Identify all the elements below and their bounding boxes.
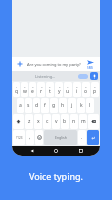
staticText: v: [55, 118, 58, 125]
button[interactable]: Microphone: [90, 72, 98, 80]
staticText: Are you coming to my party?: [27, 62, 81, 67]
staticText: w: [23, 88, 27, 95]
staticText: h: [61, 102, 65, 109]
staticText: r: [40, 88, 43, 95]
button[interactable]: g: [50, 98, 58, 113]
button[interactable]: a: [17, 98, 24, 113]
button[interactable]: .: [78, 130, 86, 145]
staticText: ?123: [16, 136, 23, 140]
staticText: 6: [59, 85, 61, 88]
staticText: i: [76, 88, 78, 95]
button[interactable]: ?123: [13, 130, 25, 145]
staticText: u: [66, 88, 70, 95]
staticText: f: [44, 102, 46, 109]
staticText: q: [15, 88, 19, 95]
button[interactable]: Emoji: [35, 130, 43, 145]
button[interactable]: m: [79, 114, 87, 129]
staticText: ,: [29, 134, 31, 141]
button[interactable]: l: [86, 98, 94, 113]
button[interactable]: d: [33, 98, 40, 113]
staticText: 9: [85, 85, 87, 88]
staticText: n: [72, 118, 76, 125]
button[interactable]: 4: [37, 82, 45, 97]
staticText: m: [81, 118, 86, 125]
staticText: e: [31, 88, 34, 95]
staticText: Voice typing.: [29, 170, 83, 182]
staticText: Listening...: [35, 74, 56, 79]
button[interactable]: f: [41, 98, 49, 113]
button[interactable]: Attach: [15, 59, 25, 69]
staticText: 4: [41, 85, 43, 88]
staticText: z: [28, 118, 31, 125]
staticText: g: [52, 102, 56, 109]
staticText: o: [84, 88, 88, 95]
button[interactable]: j: [68, 98, 76, 113]
staticText: d: [35, 102, 39, 109]
button[interactable]: 2: [21, 82, 28, 97]
staticText: y: [58, 88, 61, 95]
button[interactable]: Send SMS: [84, 59, 97, 70]
button[interactable]: Voice toggle: [78, 74, 88, 79]
staticText: c: [46, 118, 49, 125]
button[interactable]: c: [43, 114, 51, 129]
button[interactable]: 8: [73, 82, 81, 97]
staticText: j: [71, 102, 73, 109]
button[interactable]: 5: [46, 82, 54, 97]
staticText: t: [49, 88, 51, 95]
staticText: p: [93, 88, 97, 95]
button[interactable]: Recents: [76, 146, 86, 156]
button[interactable]: Back: [27, 146, 37, 156]
button[interactable]: Backspace: [88, 114, 99, 129]
staticText: x: [37, 118, 40, 125]
staticText: 8: [76, 85, 78, 88]
button[interactable]: b: [61, 114, 69, 129]
button[interactable]: h: [59, 98, 67, 113]
button[interactable]: s: [25, 98, 32, 113]
staticText: SMS: [87, 66, 94, 70]
button[interactable]: n: [70, 114, 78, 129]
button[interactable]: 7: [64, 82, 72, 97]
button[interactable]: 0: [91, 82, 99, 97]
button[interactable]: 1: [13, 82, 20, 97]
button[interactable]: 3: [29, 82, 36, 97]
button[interactable]: 6: [55, 82, 63, 97]
button[interactable]: z: [25, 114, 33, 129]
staticText: k: [80, 102, 83, 109]
staticText: 1: [16, 85, 18, 88]
staticText: 3: [32, 85, 34, 88]
staticText: b: [63, 118, 67, 125]
button[interactable]: k: [77, 98, 85, 113]
button[interactable]: Shift: [13, 114, 24, 129]
button[interactable]: ,: [26, 130, 34, 145]
button[interactable]: x: [34, 114, 42, 129]
button[interactable]: Home: [51, 146, 61, 156]
button[interactable]: English: [44, 130, 77, 145]
staticText: 5: [49, 85, 51, 88]
button[interactable]: v: [52, 114, 60, 129]
staticText: English: [55, 135, 67, 140]
button[interactable]: 9: [82, 82, 90, 97]
staticText: 2: [24, 85, 26, 88]
button[interactable]: Enter: [87, 130, 99, 145]
staticText: l: [89, 102, 91, 109]
staticText: 0: [94, 85, 96, 88]
staticText: .: [81, 134, 83, 141]
staticText: s: [27, 102, 30, 109]
staticText: 7: [67, 85, 69, 88]
staticText: a: [19, 102, 22, 109]
